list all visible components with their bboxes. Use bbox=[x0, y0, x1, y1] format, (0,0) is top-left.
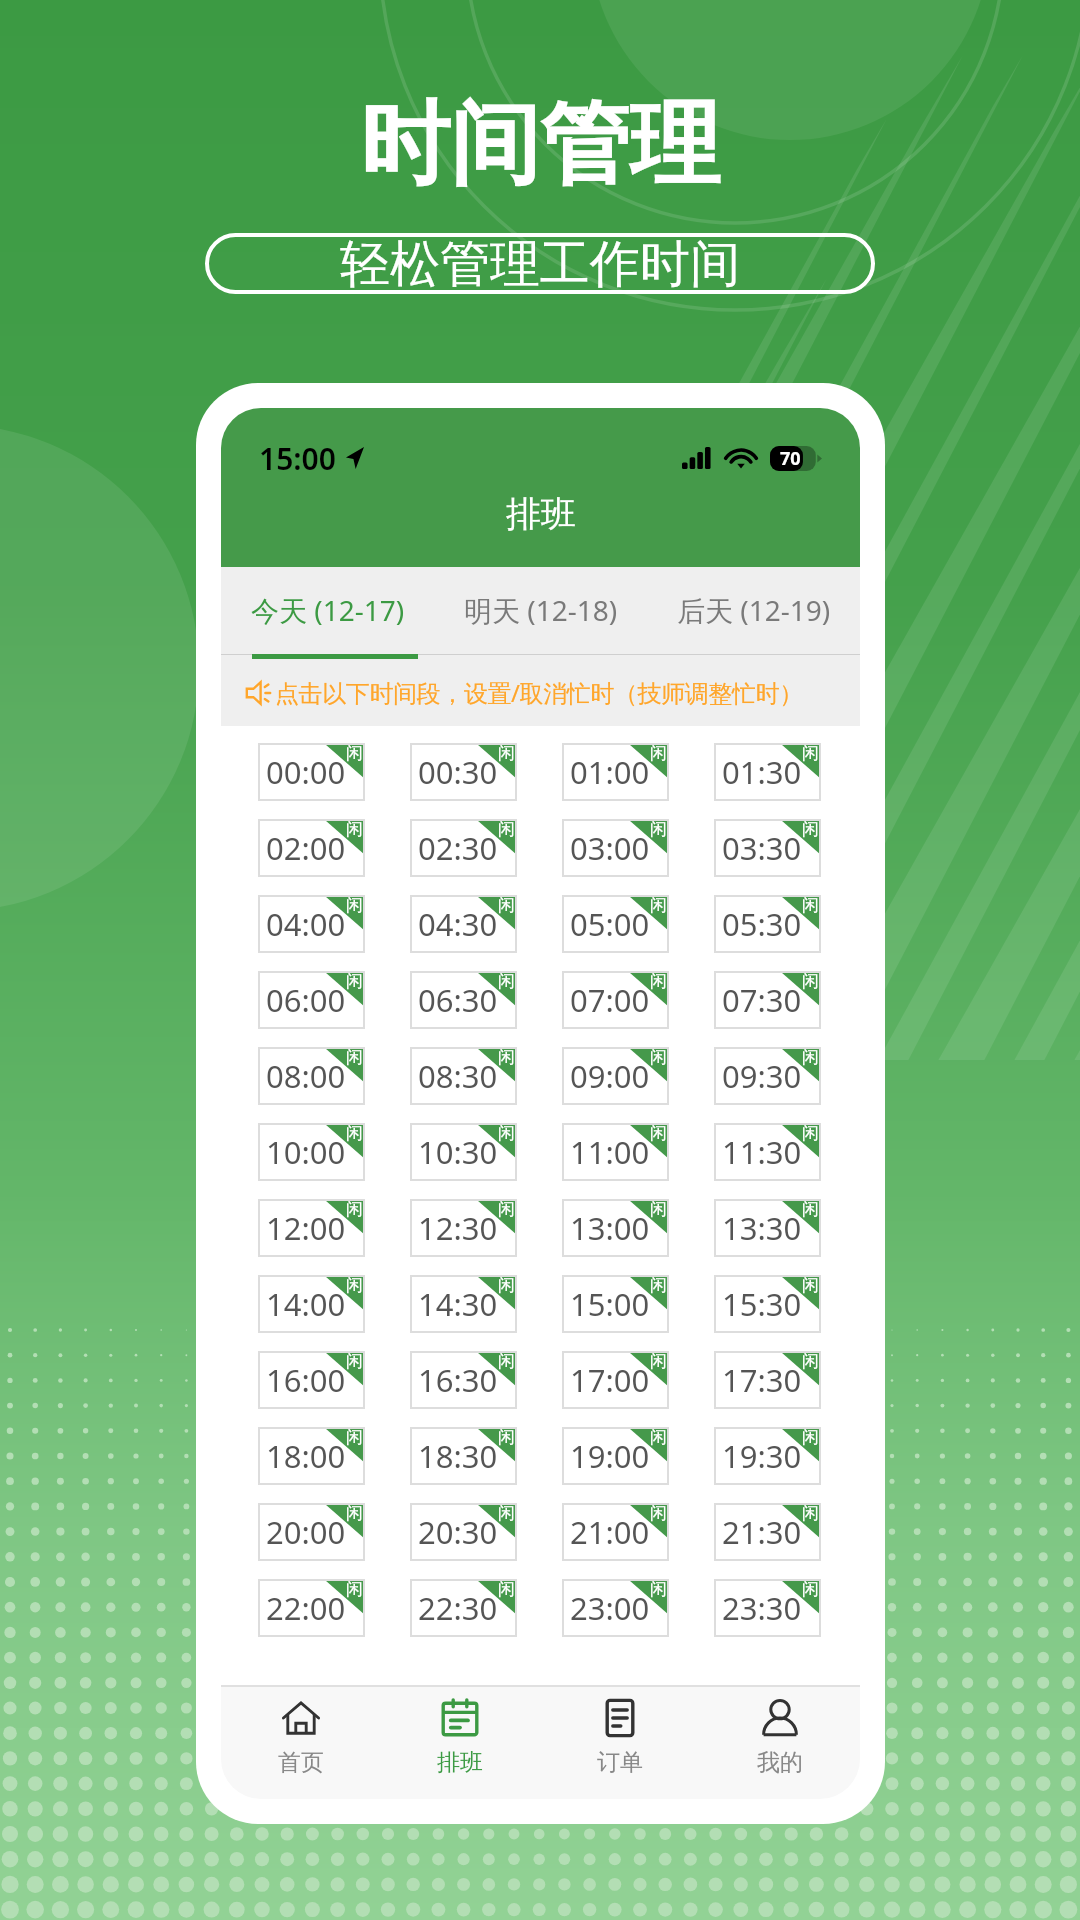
button[interactable]: 01:30 bbox=[714, 743, 821, 801]
button[interactable]: 09:00 bbox=[562, 1047, 669, 1105]
staticText: 闲 bbox=[498, 971, 515, 992]
staticText: 03:00 bbox=[570, 827, 650, 869]
staticText: 23:00 bbox=[570, 1587, 650, 1629]
button[interactable]: 20:00 bbox=[258, 1503, 365, 1561]
button[interactable]: 03:00 bbox=[562, 819, 669, 877]
button[interactable]: 16:00 bbox=[258, 1351, 365, 1409]
button[interactable]: 22:00 bbox=[258, 1579, 365, 1637]
staticText: 11:00 bbox=[570, 1131, 650, 1173]
button[interactable]: 03:30 bbox=[714, 819, 821, 877]
button[interactable]: 05:30 bbox=[714, 895, 821, 953]
button[interactable]: 14:00 bbox=[258, 1275, 365, 1333]
staticText: 闲 bbox=[498, 819, 515, 840]
button[interactable]: 19:30 bbox=[714, 1427, 821, 1485]
staticText: 13:00 bbox=[570, 1207, 650, 1249]
staticText: 闲 bbox=[802, 1503, 819, 1524]
staticText: 闲 bbox=[346, 1579, 363, 1600]
staticText: 闲 bbox=[802, 1427, 819, 1448]
staticText: 06:30 bbox=[418, 979, 498, 1021]
button[interactable]: 17:30 bbox=[714, 1351, 821, 1409]
staticText: 订单 bbox=[597, 1748, 643, 1777]
staticText: 13:30 bbox=[722, 1207, 802, 1249]
button[interactable]: 10:30 bbox=[410, 1123, 517, 1181]
staticText: 闲 bbox=[650, 1427, 667, 1448]
button[interactable]: 11:00 bbox=[562, 1123, 669, 1181]
button[interactable]: 07:00 bbox=[562, 971, 669, 1029]
button[interactable]: 16:30 bbox=[410, 1351, 517, 1409]
button[interactable]: 后天 (12-19) bbox=[647, 567, 860, 659]
button[interactable]: 07:30 bbox=[714, 971, 821, 1029]
button[interactable]: 04:30 bbox=[410, 895, 517, 953]
staticText: 04:30 bbox=[418, 903, 498, 945]
button[interactable]: 08:00 bbox=[258, 1047, 365, 1105]
button[interactable]: 12:30 bbox=[410, 1199, 517, 1257]
staticText: 闲 bbox=[498, 1351, 515, 1372]
button[interactable]: 23:00 bbox=[562, 1579, 669, 1637]
button[interactable]: 23:30 bbox=[714, 1579, 821, 1637]
staticText: 09:30 bbox=[722, 1055, 802, 1097]
staticText: 22:00 bbox=[266, 1587, 346, 1629]
button[interactable]: 今天 (12-17) bbox=[221, 567, 434, 659]
button[interactable]: 04:00 bbox=[258, 895, 365, 953]
button[interactable]: 明天 (12-18) bbox=[434, 567, 647, 659]
button[interactable]: 02:30 bbox=[410, 819, 517, 877]
button[interactable]: 19:00 bbox=[562, 1427, 669, 1485]
button[interactable]: 15:30 bbox=[714, 1275, 821, 1333]
button[interactable]: 13:30 bbox=[714, 1199, 821, 1257]
staticText: 闲 bbox=[498, 1579, 515, 1600]
button[interactable]: 08:30 bbox=[410, 1047, 517, 1105]
staticText: 闲 bbox=[650, 743, 667, 764]
button[interactable]: 我的 bbox=[700, 1685, 860, 1799]
button[interactable]: 00:30 bbox=[410, 743, 517, 801]
staticText: 轻松管理工作时间 bbox=[340, 233, 740, 294]
button[interactable]: 10:00 bbox=[258, 1123, 365, 1181]
button[interactable]: 09:30 bbox=[714, 1047, 821, 1105]
staticText: 23:30 bbox=[722, 1587, 802, 1629]
staticText: 闲 bbox=[650, 1579, 667, 1600]
button[interactable]: 02:00 bbox=[258, 819, 365, 877]
button[interactable]: 12:00 bbox=[258, 1199, 365, 1257]
staticText: 08:00 bbox=[266, 1055, 346, 1097]
staticText: 闲 bbox=[498, 1275, 515, 1296]
button[interactable]: 18:30 bbox=[410, 1427, 517, 1485]
staticText: 首页 bbox=[278, 1748, 324, 1777]
staticText: 16:30 bbox=[418, 1359, 498, 1401]
staticText: 闲 bbox=[802, 1351, 819, 1372]
staticText: 闲 bbox=[802, 1275, 819, 1296]
button[interactable]: 20:30 bbox=[410, 1503, 517, 1561]
staticText: 16:00 bbox=[266, 1359, 346, 1401]
button[interactable]: 首页 bbox=[221, 1685, 380, 1799]
staticText: 11:30 bbox=[722, 1131, 802, 1173]
staticText: 闲 bbox=[498, 895, 515, 916]
staticText: 闲 bbox=[802, 971, 819, 992]
button[interactable]: 21:00 bbox=[562, 1503, 669, 1561]
button[interactable]: 11:30 bbox=[714, 1123, 821, 1181]
button[interactable]: 点击以下时间段，设置/取消忙时（技师调整忙时） bbox=[221, 659, 860, 726]
staticText: 闲 bbox=[498, 1123, 515, 1144]
button[interactable]: 00:00 bbox=[258, 743, 365, 801]
button[interactable]: 18:00 bbox=[258, 1427, 365, 1485]
button[interactable]: 22:30 bbox=[410, 1579, 517, 1637]
staticText: 闲 bbox=[650, 895, 667, 916]
button[interactable]: 06:30 bbox=[410, 971, 517, 1029]
button[interactable]: 01:00 bbox=[562, 743, 669, 801]
button[interactable]: 14:30 bbox=[410, 1275, 517, 1333]
staticText: 06:00 bbox=[266, 979, 346, 1021]
staticText: 闲 bbox=[802, 1579, 819, 1600]
staticText: 04:00 bbox=[266, 903, 346, 945]
button[interactable]: 排班 bbox=[380, 1685, 540, 1799]
button[interactable]: 15:00 bbox=[562, 1275, 669, 1333]
button[interactable]: 06:00 bbox=[258, 971, 365, 1029]
staticText: 21:30 bbox=[722, 1511, 802, 1553]
staticText: 闲 bbox=[346, 971, 363, 992]
button[interactable]: 订单 bbox=[540, 1685, 700, 1799]
staticText: 闲 bbox=[802, 895, 819, 916]
staticText: 20:30 bbox=[418, 1511, 498, 1553]
button[interactable]: 13:00 bbox=[562, 1199, 669, 1257]
staticText: 12:00 bbox=[266, 1207, 346, 1249]
button[interactable]: 05:00 bbox=[562, 895, 669, 953]
staticText: 15:30 bbox=[722, 1283, 802, 1325]
button[interactable]: 21:30 bbox=[714, 1503, 821, 1561]
button[interactable]: 17:00 bbox=[562, 1351, 669, 1409]
staticText: 闲 bbox=[346, 743, 363, 764]
